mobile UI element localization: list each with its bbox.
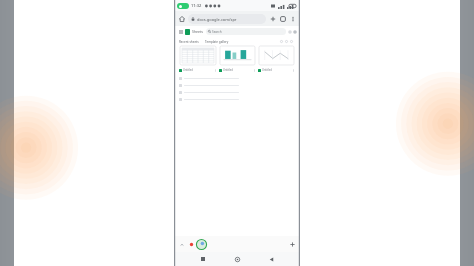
button[interactable]: Untitled — [179, 45, 217, 73]
button[interactable] — [179, 89, 295, 95]
button[interactable] — [179, 96, 295, 102]
button[interactable]: Untitled — [258, 45, 295, 73]
button[interactable]: Home — [232, 254, 242, 264]
button[interactable]: Back — [266, 254, 276, 264]
staticText: 11:32 — [191, 3, 202, 8]
button[interactable]: Switch tabs — [278, 14, 287, 23]
staticText: Untitled — [262, 68, 292, 72]
button[interactable]: Add — [289, 241, 296, 248]
button[interactable]: More options — [288, 14, 297, 23]
button[interactable]: Untitled — [219, 45, 256, 73]
button[interactable]: New tab — [268, 14, 277, 23]
button[interactable]: Recents — [198, 254, 208, 264]
staticText: Template gallery — [205, 40, 229, 44]
button[interactable]: Home — [177, 14, 186, 23]
staticText: Search — [212, 30, 222, 34]
button[interactable]: Menu — [177, 28, 184, 35]
staticText: Recent sheets — [179, 40, 199, 44]
button[interactable] — [179, 82, 295, 88]
staticText: docs.google.com/spr — [197, 17, 237, 22]
staticText: Untitled — [223, 68, 253, 72]
staticText: Sheets — [192, 29, 203, 34]
button[interactable] — [179, 75, 295, 81]
button[interactable]: docs.google.com/spr — [188, 14, 266, 24]
button[interactable]: Expand — [178, 241, 185, 248]
button[interactable]: Search — [206, 28, 286, 35]
staticText: Untitled — [183, 68, 214, 72]
